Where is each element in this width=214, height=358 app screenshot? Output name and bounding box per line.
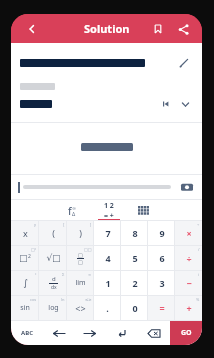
staticText: ∞ [88,272,92,277]
staticText: Solution [84,21,130,36]
button[interactable]: sin [11,296,39,320]
staticText: ÷ [197,222,200,227]
button[interactable]: Enter [106,321,138,345]
staticText: sin [20,303,30,313]
staticText: = + [104,211,114,221]
button[interactable]: Move left [42,321,74,345]
staticText: [ [63,222,65,227]
staticText: 6 [159,252,165,264]
staticText: f [68,204,72,218]
button[interactable]: Edit [175,54,193,72]
button[interactable]: ) [67,221,94,245]
staticText: i [198,272,200,277]
button[interactable]: <> [67,296,94,320]
staticText: GO [181,328,192,338]
button[interactable]: 3 [148,271,175,295]
staticText: 2 [28,253,31,260]
staticText: y [34,222,37,227]
staticText: 8 [132,227,138,239]
button[interactable]: × [175,221,202,245]
button[interactable]: Functions tab [55,200,89,221]
staticText: ∞ [72,205,77,211]
staticText: 3 [159,277,165,289]
button[interactable]: 2 [121,271,148,295]
button[interactable]: □ [67,246,94,270]
button[interactable]: Camera [179,179,195,195]
staticText: □ [78,252,83,258]
staticText: 9 [159,227,165,239]
staticText: 0 [132,302,138,314]
button[interactable]: 1 [94,271,121,295]
staticText: x [23,227,28,239]
staticText: . [106,302,109,314]
button[interactable]: x [11,221,39,245]
button[interactable]: Keyboard tab [129,200,159,221]
staticText: cos [30,297,37,302]
button[interactable]: 0 [121,296,148,320]
staticText: = [159,302,165,314]
button[interactable]: lim [67,271,94,295]
button[interactable]: Share [172,18,194,40]
button[interactable]: Move right [74,321,106,345]
staticText: ᶜ [35,272,37,277]
staticText: 1 [105,277,111,289]
button[interactable]: √□ [39,246,67,270]
button[interactable]: 6 [148,246,175,270]
button[interactable]: log [39,296,67,320]
button[interactable]: d [39,271,67,295]
staticText: / [198,247,200,252]
button[interactable]: Delete [138,321,170,345]
button[interactable]: 7 [94,221,121,245]
staticText: ÷ [186,252,192,264]
staticText: 7 [105,227,111,239]
staticText: − [186,277,192,289]
button[interactable]: Expand [177,96,193,112]
staticText: √□ [46,253,61,263]
button[interactable]: Previous step [158,96,174,112]
button[interactable]: 4 [94,246,121,270]
staticText: ln [61,297,65,302]
button[interactable]: . [94,296,121,320]
staticText: ] [90,222,92,227]
staticText: 1 2 [104,201,114,211]
button[interactable]: ÷ [175,246,202,270]
staticText: ( [52,227,55,239]
button[interactable]: = [148,296,175,320]
staticText: Δ [72,211,76,218]
staticText: □ [19,253,28,263]
staticText: ABC [21,329,33,337]
staticText: × [186,227,192,239]
staticText: lim [75,278,86,288]
staticText: ≤≥ [85,297,92,302]
button[interactable]: Bookmark [147,18,169,40]
button[interactable]: ( [39,221,67,245]
staticText: 5 [132,252,138,264]
staticText: log [48,303,59,313]
button[interactable]: □ [11,246,39,270]
staticText: □ [78,259,83,265]
button[interactable]: Back [21,18,43,40]
staticText: □ᶜ [31,247,37,252]
staticText: ) [79,227,82,239]
staticText: 2 [132,277,138,289]
button[interactable]: GO [170,321,202,345]
staticText: 4 [105,252,111,264]
button[interactable]: ABC [11,321,42,345]
staticText: <> [75,302,86,314]
staticText: % [196,297,200,302]
button[interactable]: − [175,271,202,295]
button[interactable]: ∫ [11,271,39,295]
staticText: □□ [84,247,92,252]
button[interactable]: + [175,296,202,320]
staticText: d [52,275,56,283]
button[interactable]: 5 [121,246,148,270]
button[interactable]: 8 [121,221,148,245]
button[interactable]: 9 [148,221,175,245]
staticText: dx [51,284,57,291]
staticText: Σ [62,272,65,277]
button[interactable]: Numbers tab [95,200,123,221]
staticText: + [186,302,192,314]
staticText: ∫ [23,278,28,288]
